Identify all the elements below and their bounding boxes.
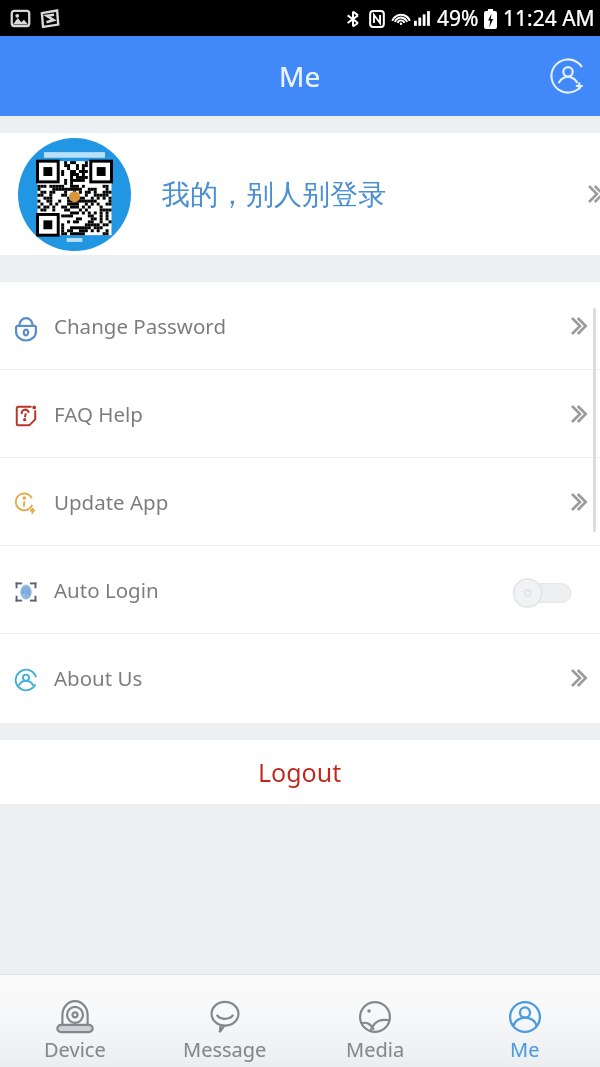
staticText: FAQ Help xyxy=(54,400,143,428)
button[interactable]: Logout xyxy=(0,740,600,804)
staticText: Device xyxy=(44,1036,106,1063)
staticText: Me xyxy=(510,1036,540,1063)
button[interactable]: Auto Login xyxy=(0,546,600,633)
button[interactable] xyxy=(513,578,571,608)
button[interactable]: Update App xyxy=(0,458,600,545)
button[interactable]: Message xyxy=(150,975,300,1067)
staticText: Update App xyxy=(54,488,169,516)
button[interactable]: 我的，别人别登录 xyxy=(0,133,600,255)
staticText: About Us xyxy=(54,664,143,692)
staticText: Message xyxy=(183,1036,267,1063)
button[interactable]: About Us xyxy=(0,634,600,721)
staticText: Auto Login xyxy=(54,576,159,604)
staticText: Change Password xyxy=(54,312,227,340)
staticText: Logout xyxy=(258,755,342,789)
staticText: 我的，别人别登录 xyxy=(162,177,386,212)
button[interactable]: Device xyxy=(0,975,150,1067)
button[interactable]: Add account xyxy=(544,52,592,100)
button[interactable]: Me xyxy=(450,975,600,1067)
staticText: Media xyxy=(346,1036,405,1063)
button[interactable]: Change Password xyxy=(0,282,600,369)
staticText: 11:24 AM xyxy=(503,4,595,33)
staticText: 49% xyxy=(437,4,479,33)
button[interactable]: Media xyxy=(300,975,450,1067)
button[interactable]: FAQ Help xyxy=(0,370,600,457)
staticText: Me xyxy=(279,57,321,95)
